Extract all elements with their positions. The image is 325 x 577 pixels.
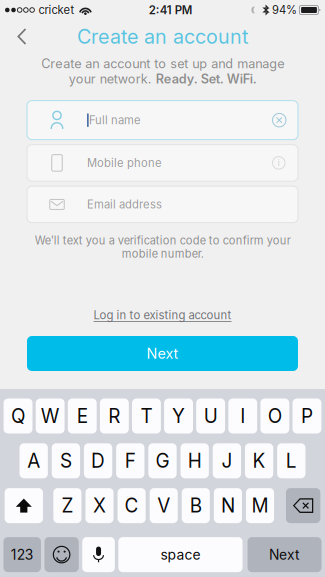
staticText: Create an account: [77, 25, 248, 48]
staticText: V: [157, 494, 170, 517]
staticText: T: [140, 404, 152, 427]
button[interactable]: Q: [4, 398, 32, 433]
staticText: O: [268, 404, 282, 427]
button[interactable]: P: [292, 398, 321, 433]
button[interactable]: G: [148, 443, 177, 478]
staticText: cricket: [38, 3, 74, 17]
staticText: W: [41, 404, 60, 427]
staticText: A: [27, 449, 40, 472]
staticText: Email address: [87, 198, 162, 211]
button[interactable]: D: [84, 443, 112, 478]
staticText: Log in to existing account: [93, 308, 231, 322]
staticText: space: [160, 546, 200, 563]
button[interactable]: Delete: [286, 488, 320, 523]
staticText: Z: [61, 494, 73, 517]
button[interactable]: Email address: [27, 186, 298, 223]
staticText: P: [301, 404, 313, 427]
staticText: Mobile phone: [87, 156, 162, 170]
button[interactable]: F: [116, 443, 144, 478]
button[interactable]: Emoji: [44, 537, 79, 572]
staticText: Create an account to set up and manage y…: [41, 56, 284, 87]
staticText: Full name: [89, 113, 141, 127]
button[interactable]: T: [132, 398, 161, 433]
button[interactable]: Next: [248, 537, 322, 572]
button[interactable]: Back: [0, 21, 41, 52]
staticText: B: [190, 494, 202, 517]
button[interactable]: Dictation: [82, 537, 115, 572]
button[interactable]: H: [180, 443, 209, 478]
button[interactable]: A: [19, 443, 48, 478]
button[interactable]: I: [228, 398, 257, 433]
staticText: G: [155, 449, 169, 472]
staticText: 94%: [272, 3, 297, 17]
button[interactable]: Y: [164, 398, 193, 433]
staticText: Q: [11, 404, 25, 427]
button[interactable]: space: [118, 537, 242, 572]
staticText: 2:41 PM: [149, 3, 193, 17]
staticText: Next: [146, 345, 178, 362]
staticText: Y: [172, 404, 185, 427]
button[interactable]: O: [260, 398, 289, 433]
staticText: Next: [269, 546, 300, 563]
staticText: L: [286, 449, 297, 472]
staticText: S: [60, 449, 72, 472]
staticText: We'll text you a verification code to co…: [34, 234, 290, 260]
staticText: i: [278, 158, 280, 168]
staticText: H: [188, 449, 202, 472]
button[interactable]: Z: [53, 488, 81, 523]
staticText: N: [221, 494, 235, 517]
button[interactable]: Log in to existing account: [93, 305, 231, 325]
button[interactable]: J: [213, 443, 241, 478]
staticText: 123: [11, 546, 34, 563]
staticText: J: [221, 449, 232, 472]
button[interactable]: 123: [3, 537, 41, 572]
staticText: I: [240, 404, 245, 427]
button[interactable]: Mobile phone: [27, 145, 298, 181]
button[interactable]: C: [118, 488, 146, 523]
button[interactable]: K: [245, 443, 273, 478]
button[interactable]: E: [68, 398, 97, 433]
button[interactable]: Next: [27, 336, 298, 371]
button[interactable]: N: [214, 488, 242, 523]
button[interactable]: U: [196, 398, 225, 433]
button[interactable]: R: [100, 398, 129, 433]
staticText: K: [253, 449, 266, 472]
staticText: M: [251, 494, 268, 517]
button[interactable]: L: [277, 443, 305, 478]
button[interactable]: V: [150, 488, 178, 523]
staticText: U: [204, 404, 218, 427]
button[interactable]: S: [52, 443, 80, 478]
staticText: C: [125, 494, 139, 517]
staticText: X: [93, 494, 106, 517]
button[interactable]: B: [182, 488, 210, 523]
button[interactable]: M: [246, 488, 274, 523]
button[interactable]: X: [85, 488, 114, 523]
staticText: E: [77, 404, 88, 427]
button[interactable]: Shift: [5, 488, 43, 523]
staticText: F: [125, 449, 136, 472]
button[interactable]: Full name: [27, 101, 298, 140]
button[interactable]: W: [36, 398, 65, 433]
staticText: R: [108, 404, 120, 427]
staticText: D: [91, 449, 105, 472]
